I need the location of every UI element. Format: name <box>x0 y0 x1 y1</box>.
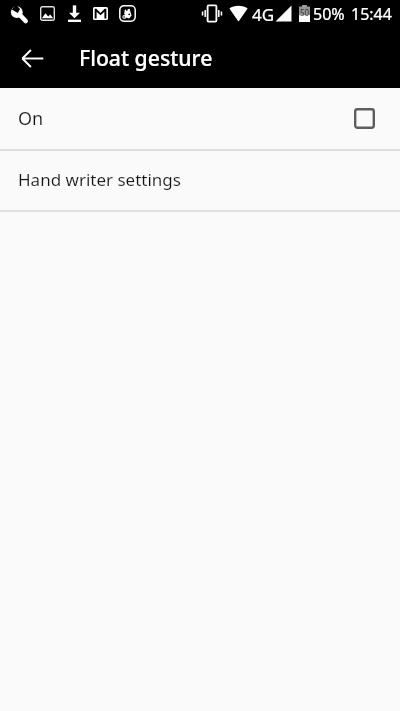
button[interactable]: On <box>0 88 400 149</box>
staticText: 50% <box>313 3 345 23</box>
staticText: 15:44 <box>351 3 392 23</box>
staticText: Hand writer settings <box>18 168 181 191</box>
staticText: On <box>18 106 44 131</box>
button[interactable]: Hand writer settings <box>0 151 400 210</box>
button[interactable]: Back <box>8 34 56 82</box>
staticText: Float gesture <box>79 43 213 72</box>
staticText: 4G <box>252 3 275 23</box>
staticText: 50 <box>300 7 310 18</box>
